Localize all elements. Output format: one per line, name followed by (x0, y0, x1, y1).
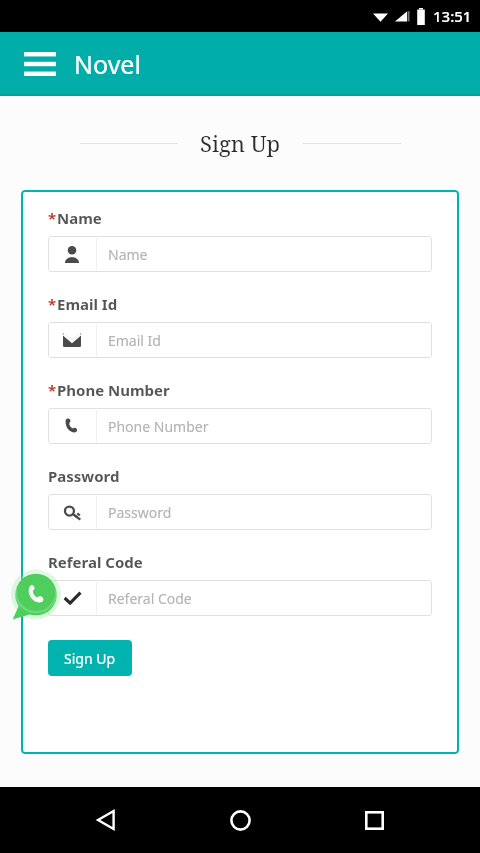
staticText: * (48, 380, 57, 400)
button[interactable]: Email Id (48, 322, 432, 358)
button[interactable]: Phone Number (48, 408, 432, 444)
staticText: 13:51 (433, 6, 472, 26)
staticText: Password (48, 466, 120, 486)
staticText: Name (57, 208, 102, 228)
button[interactable]: Sign Up (48, 640, 132, 676)
button[interactable]: Recent apps (346, 792, 402, 848)
staticText: Phone Number (57, 380, 170, 400)
button[interactable]: Home (212, 792, 268, 848)
button[interactable]: Password (48, 494, 432, 530)
button[interactable]: Name (48, 236, 432, 272)
staticText: Email Id (57, 294, 118, 314)
staticText: * (48, 208, 57, 228)
staticText: Email Id (108, 331, 161, 350)
staticText: Referal Code (48, 552, 143, 572)
staticText: Novel (74, 47, 141, 81)
staticText: Sign Up (64, 649, 116, 668)
staticText: Name (108, 245, 148, 264)
button[interactable]: Chat on WhatsApp (9, 570, 61, 622)
button[interactable]: Open navigation menu (20, 44, 60, 84)
staticText: * (48, 294, 57, 314)
button[interactable]: Back (78, 792, 134, 848)
staticText: Phone Number (108, 417, 209, 436)
button[interactable]: Referal Code (48, 580, 432, 616)
staticText: Sign Up (200, 128, 281, 158)
staticText: Password (108, 503, 172, 522)
staticText: Referal Code (108, 589, 192, 608)
